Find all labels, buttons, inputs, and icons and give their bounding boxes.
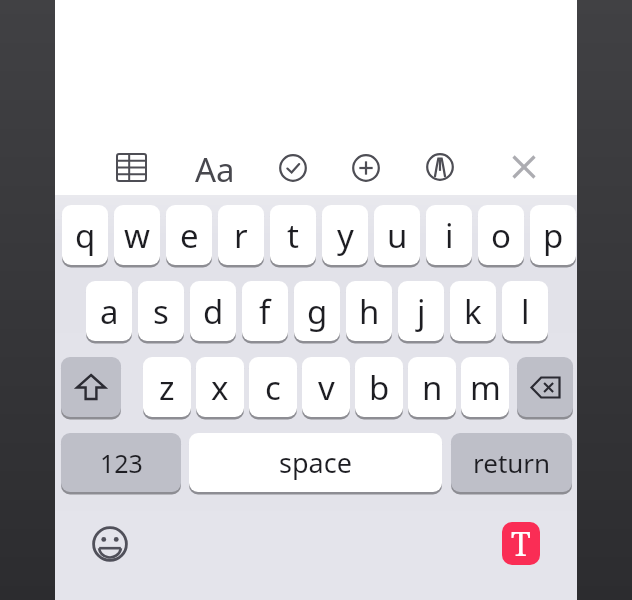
- staticText: h: [359, 289, 380, 334]
- staticText: t: [287, 213, 299, 258]
- staticText: f: [259, 289, 271, 334]
- button[interactable]: t: [270, 205, 316, 265]
- staticText: x: [211, 365, 229, 410]
- button[interactable]: j: [398, 281, 444, 341]
- button[interactable]: [279, 154, 307, 182]
- staticText: w: [124, 213, 150, 258]
- staticText: a: [100, 289, 119, 334]
- staticText: p: [543, 213, 564, 258]
- staticText: r: [234, 213, 248, 258]
- staticText: c: [265, 365, 281, 410]
- staticText: n: [422, 365, 443, 410]
- button[interactable]: [352, 154, 380, 182]
- button[interactable]: f: [242, 281, 288, 341]
- staticText: m: [470, 365, 501, 410]
- button[interactable]: o: [478, 205, 524, 265]
- button[interactable]: i: [426, 205, 472, 265]
- staticText: j: [417, 289, 426, 334]
- staticText: o: [491, 213, 511, 258]
- staticText: q: [75, 213, 96, 258]
- button[interactable]: [116, 153, 147, 182]
- button[interactable]: w: [114, 205, 160, 265]
- button[interactable]: l: [502, 281, 548, 341]
- button[interactable]: m: [461, 357, 509, 417]
- staticText: z: [159, 365, 175, 410]
- button[interactable]: a: [86, 281, 132, 341]
- button[interactable]: 123: [61, 433, 181, 492]
- staticText: i: [445, 213, 454, 258]
- staticText: g: [307, 289, 328, 334]
- button[interactable]: e: [166, 205, 212, 265]
- button[interactable]: [517, 357, 573, 417]
- staticText: d: [203, 289, 224, 334]
- staticText: v: [318, 365, 335, 410]
- staticText: k: [464, 289, 482, 334]
- button[interactable]: q: [62, 205, 108, 265]
- staticText: s: [153, 289, 169, 334]
- button[interactable]: [426, 153, 454, 181]
- staticText: space: [279, 444, 352, 481]
- staticText: y: [337, 213, 354, 258]
- button[interactable]: g: [294, 281, 340, 341]
- button[interactable]: c: [249, 357, 297, 417]
- button[interactable]: [92, 526, 128, 562]
- button[interactable]: x: [196, 357, 244, 417]
- staticText: T: [511, 522, 531, 565]
- button[interactable]: d: [190, 281, 236, 341]
- button[interactable]: [61, 357, 121, 417]
- button[interactable]: T: [502, 522, 540, 565]
- button[interactable]: b: [355, 357, 403, 417]
- staticText: l: [521, 289, 530, 334]
- button[interactable]: [512, 155, 536, 179]
- button[interactable]: h: [346, 281, 392, 341]
- button[interactable]: y: [322, 205, 368, 265]
- staticText: Aa: [195, 147, 235, 189]
- staticText: b: [369, 365, 390, 410]
- staticText: 123: [100, 446, 143, 480]
- button[interactable]: z: [143, 357, 191, 417]
- button[interactable]: space: [189, 433, 442, 492]
- staticText: u: [387, 213, 408, 258]
- button[interactable]: return: [451, 433, 572, 492]
- button[interactable]: r: [218, 205, 264, 265]
- button[interactable]: k: [450, 281, 496, 341]
- staticText: return: [473, 445, 551, 480]
- staticText: e: [180, 213, 199, 258]
- button[interactable]: v: [302, 357, 350, 417]
- button[interactable]: p: [530, 205, 576, 265]
- button[interactable]: n: [408, 357, 456, 417]
- button[interactable]: Aa: [193, 147, 237, 189]
- button[interactable]: u: [374, 205, 420, 265]
- button[interactable]: s: [138, 281, 184, 341]
